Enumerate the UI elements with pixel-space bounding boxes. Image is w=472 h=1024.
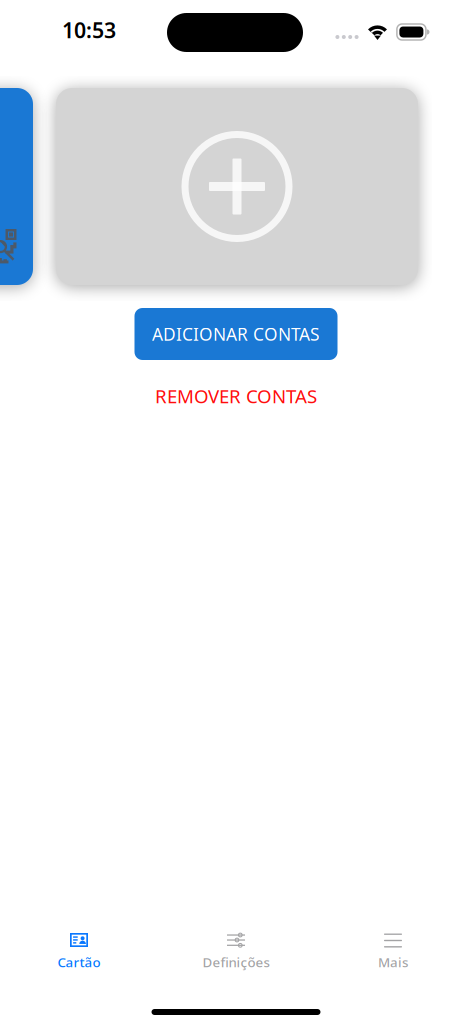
- button[interactable]: ADICIONAR CONTAS: [134, 308, 337, 360]
- staticText: Definições: [202, 953, 269, 971]
- button[interactable]: Cartão: [0, 88, 33, 285]
- staticText: Cartão: [57, 953, 100, 971]
- button[interactable]: Mais: [314, 926, 471, 996]
- staticText: Mais: [378, 953, 408, 971]
- staticText: 10:53: [62, 16, 116, 44]
- button[interactable]: Cartão: [0, 926, 157, 996]
- staticText: ADICIONAR CONTAS: [152, 322, 320, 345]
- staticText: REMOVER CONTAS: [155, 384, 317, 408]
- button[interactable]: REMOVER CONTAS: [106, 374, 366, 418]
- button[interactable]: Definições: [157, 926, 314, 996]
- button[interactable]: Adicionar cartão: [56, 88, 418, 285]
